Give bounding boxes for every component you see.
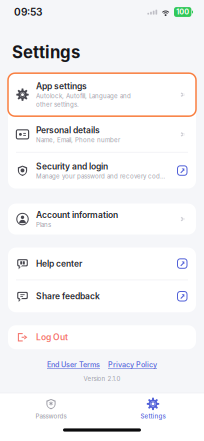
staticText: Plans (36, 221, 51, 228)
staticText: Name, Email, Phone number (36, 136, 120, 144)
button[interactable]: Personal details (8, 117, 196, 152)
button[interactable]: Passwords (0, 393, 102, 423)
staticText: 09:53 (14, 6, 42, 18)
staticText: Help center (36, 258, 82, 269)
staticText: Manage your password and recovery cod… (36, 172, 165, 180)
staticText: Settings (140, 413, 165, 420)
staticText: Autolock, Autofill, Language and (36, 92, 131, 100)
staticText: Share feedback (36, 291, 100, 301)
button[interactable]: End User Terms (47, 360, 100, 369)
staticText: Version 2.1.0 (83, 375, 120, 382)
staticText: End User Terms (47, 360, 100, 369)
staticText: Security and login (36, 161, 108, 171)
staticText: App settings (36, 81, 87, 91)
staticText: Personal details (36, 125, 100, 135)
staticText: Account information (36, 210, 118, 220)
button[interactable]: App settings (8, 73, 196, 116)
staticText: Passwords (35, 413, 66, 420)
button[interactable]: Account information (8, 204, 196, 235)
button[interactable]: Log Out (8, 325, 196, 349)
staticText: other settings. (36, 101, 79, 108)
button[interactable]: Security and login (8, 153, 196, 189)
button[interactable]: Help center (8, 248, 196, 280)
button[interactable]: Privacy Policy (108, 360, 157, 369)
staticText: 100 (176, 7, 189, 16)
staticText: Privacy Policy (108, 360, 157, 369)
staticText: Settings (12, 42, 80, 62)
button[interactable]: Settings (102, 393, 204, 423)
staticText: Log Out (36, 332, 68, 342)
button[interactable]: Share feedback (8, 280, 196, 312)
